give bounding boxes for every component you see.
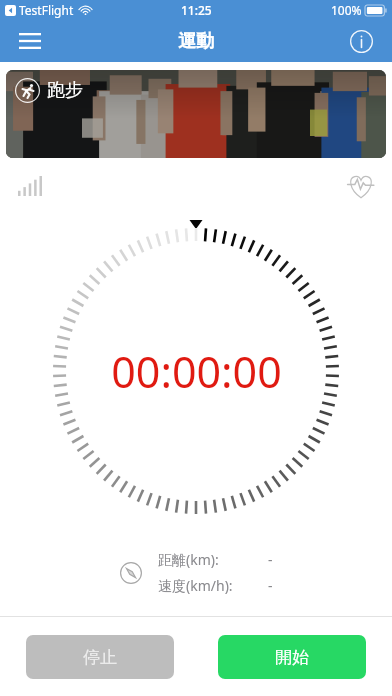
button[interactable]: GPS signal bbox=[10, 166, 50, 206]
staticText: - bbox=[268, 576, 273, 595]
staticText: 100% bbox=[331, 2, 362, 18]
button[interactable]: Information bbox=[340, 20, 382, 62]
staticText: 開始 bbox=[275, 647, 309, 668]
staticText: 運動 bbox=[178, 30, 214, 53]
button[interactable]: 開始 bbox=[218, 635, 366, 679]
staticText: 00:00:00 bbox=[111, 342, 282, 401]
button[interactable]: 停止 bbox=[26, 635, 174, 679]
staticText: 距離(km): bbox=[158, 550, 219, 569]
staticText: 速度(km/h): bbox=[158, 576, 233, 595]
staticText: 11:25 bbox=[181, 2, 212, 18]
staticText: 停止 bbox=[83, 647, 117, 668]
staticText: 跑步 bbox=[47, 79, 83, 102]
staticText: TestFlight bbox=[19, 2, 74, 18]
button[interactable]: Menu bbox=[8, 20, 52, 62]
button[interactable]: 跑步 bbox=[6, 70, 386, 158]
staticText: - bbox=[268, 550, 273, 569]
button[interactable]: Heart rate bbox=[340, 166, 382, 206]
